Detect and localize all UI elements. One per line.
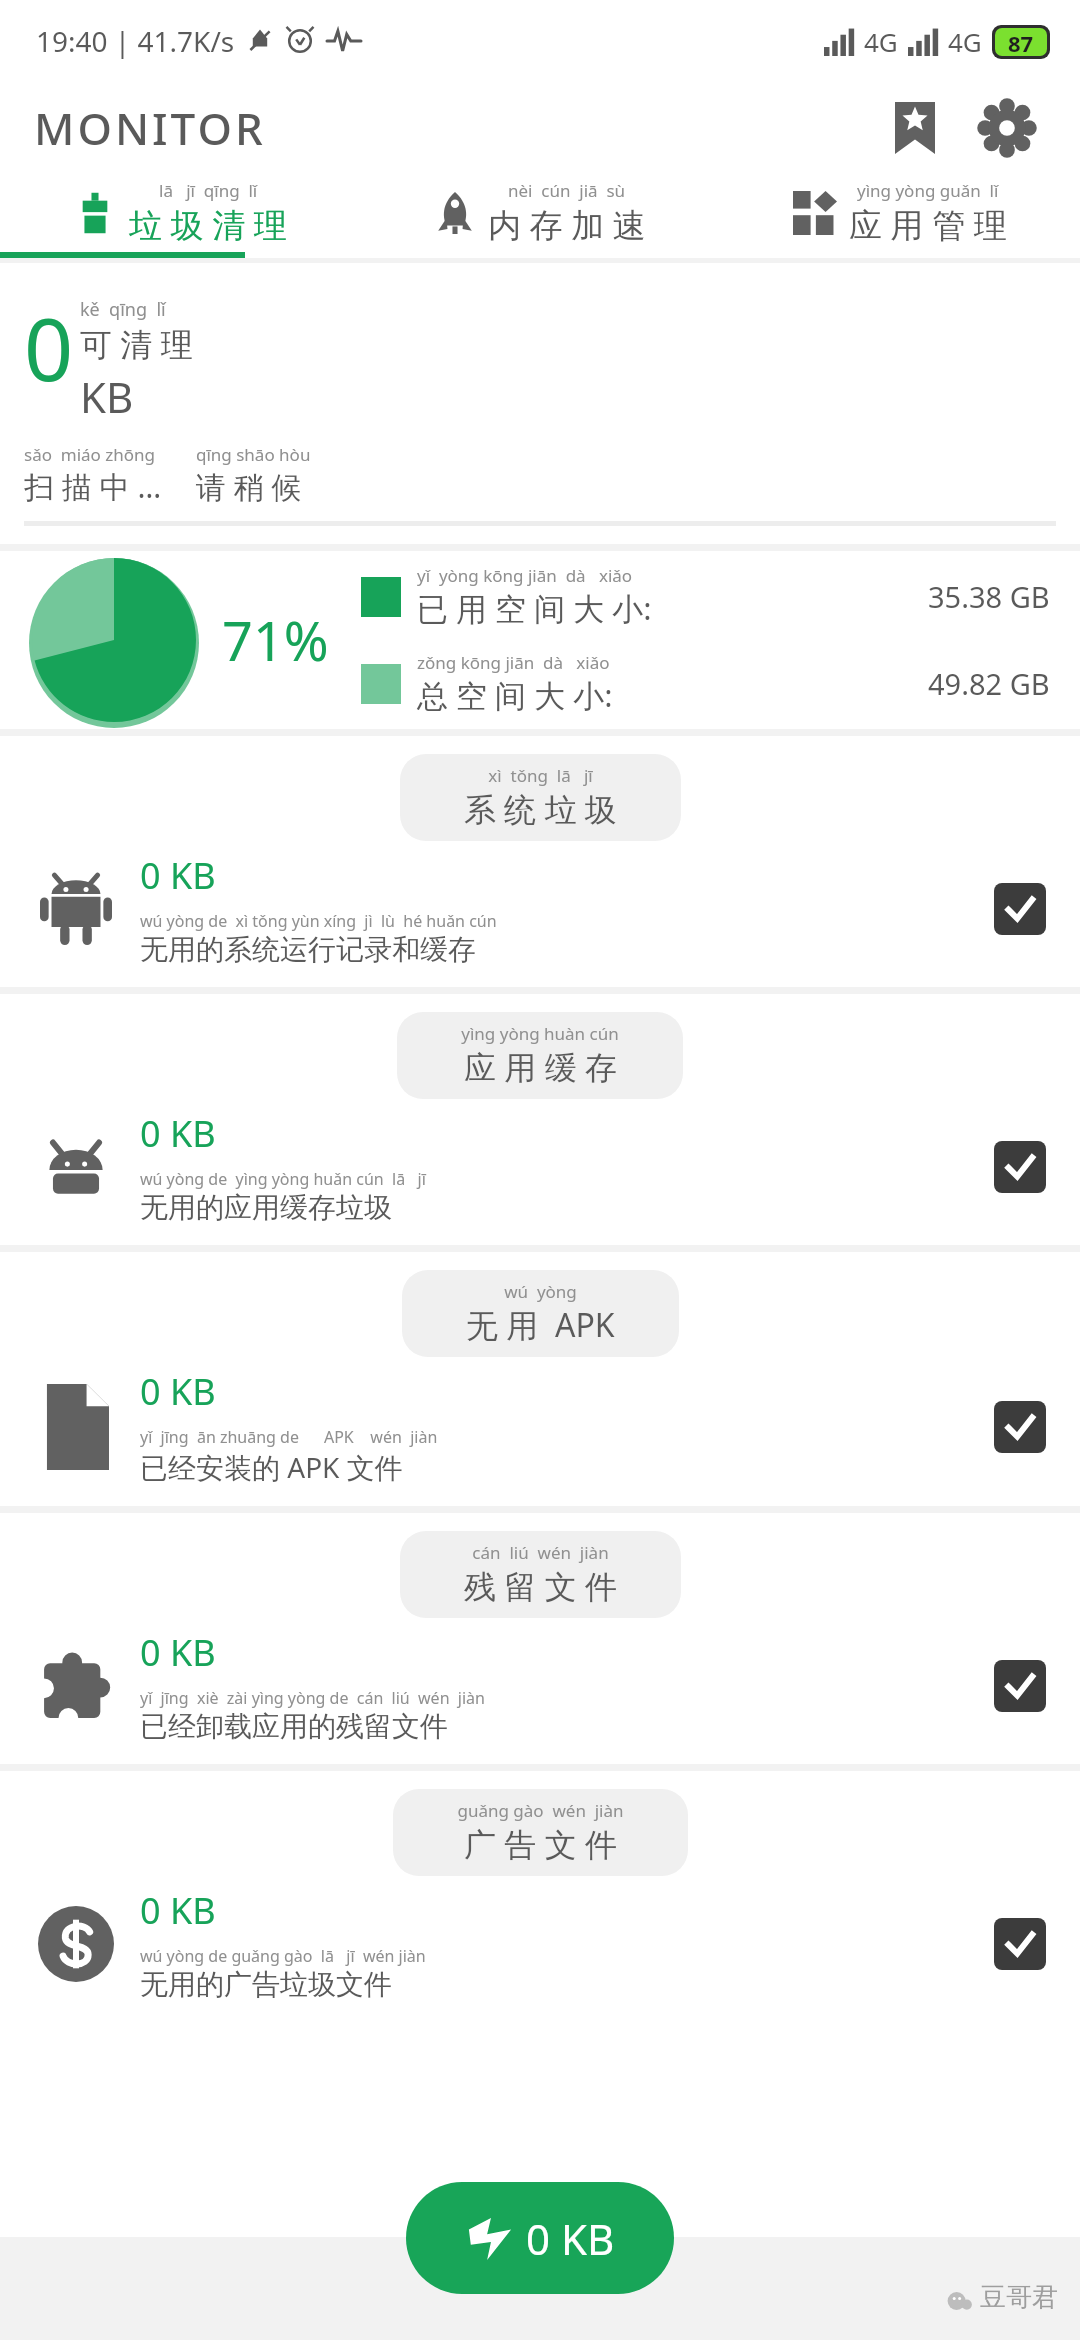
staticText: 71% bbox=[222, 603, 329, 677]
staticText: yǐ jīng xiè zài yìng yòng de cán liú wén… bbox=[140, 1687, 485, 1709]
staticText: 残 留 文 件 bbox=[464, 1564, 617, 1608]
staticText: wú yòng de guǎng gào lā jī wén jiàn bbox=[140, 1945, 426, 1967]
button[interactable]: xì tǒng lā jī bbox=[400, 754, 681, 841]
staticText: 垃 圾 清 理 bbox=[129, 202, 287, 247]
staticText: sǎo miáo zhōng bbox=[24, 443, 156, 466]
staticText: wú yòng bbox=[504, 1280, 577, 1303]
staticText: 49.82 GB bbox=[928, 664, 1050, 703]
button[interactable]: yìng yòng huàn cún bbox=[397, 1012, 683, 1099]
staticText: 可 清 理 bbox=[80, 322, 193, 366]
staticText: 19:40 | 41.7K/s bbox=[36, 22, 235, 60]
staticText: xì tǒng lā jī bbox=[488, 764, 593, 787]
button[interactable]: guǎng gào wén jiàn bbox=[393, 1789, 688, 1876]
staticText: guǎng gào wén jiàn bbox=[457, 1799, 624, 1822]
staticText: MONITOR bbox=[34, 98, 266, 158]
staticText: 无用的系统运行记录和缓存 bbox=[140, 932, 476, 967]
button[interactable]: Toggle 无 用 APK bbox=[994, 1401, 1046, 1453]
staticText: 0 KB bbox=[140, 1367, 216, 1416]
staticText: qīng shāo hòu bbox=[196, 443, 311, 466]
staticText: 总 空 间 大 小: bbox=[417, 674, 613, 716]
button[interactable]: 0 KB bbox=[0, 1876, 1080, 2022]
button[interactable]: Settings bbox=[970, 91, 1044, 165]
staticText: 应 用 管 理 bbox=[849, 202, 1007, 247]
staticText: wú yòng de xì tǒng yùn xíng jì lù hé huǎ… bbox=[140, 910, 497, 932]
button[interactable]: Toggle 应 用 缓 存 bbox=[994, 1141, 1046, 1193]
staticText: 已经安装的 APK 文件 bbox=[140, 1448, 403, 1486]
staticText: 豆哥君 bbox=[980, 2281, 1058, 2314]
button[interactable]: 0 KB bbox=[0, 1357, 1080, 1506]
staticText: yǐ yòng kōng jiān dà xiǎo bbox=[417, 564, 633, 587]
button[interactable]: 0 KB bbox=[406, 2182, 674, 2294]
staticText: zǒng kōng jiān dà xiǎo bbox=[417, 651, 610, 674]
staticText: 系 统 垃 圾 bbox=[464, 787, 617, 831]
staticText: 87 bbox=[1008, 28, 1034, 56]
staticText: 4G bbox=[948, 24, 982, 59]
staticText: 0 KB bbox=[140, 1886, 216, 1935]
staticText: 无用的广告垃圾文件 bbox=[140, 1967, 392, 2002]
button[interactable]: 0 KB bbox=[0, 1618, 1080, 1764]
button[interactable]: yìng yòng guǎn lǐ bbox=[720, 174, 1080, 252]
staticText: cán liú wén jiàn bbox=[472, 1541, 609, 1564]
button[interactable]: 0 KB bbox=[0, 1099, 1080, 1245]
button[interactable]: Bookmark bbox=[878, 91, 952, 165]
staticText: 扫 描 中 … bbox=[24, 466, 162, 507]
staticText: 35.38 GB bbox=[928, 577, 1050, 616]
staticText: 0 KB bbox=[140, 1628, 216, 1677]
staticText: nèi cún jiā sù bbox=[508, 179, 626, 202]
staticText: wú yòng de yìng yòng huǎn cún lā jī bbox=[140, 1168, 426, 1190]
staticText: 0 bbox=[24, 289, 74, 406]
staticText: 已 用 空 间 大 小: bbox=[417, 587, 652, 629]
staticText: yìng yòng guǎn lǐ bbox=[857, 179, 999, 202]
staticText: 已经卸载应用的残留文件 bbox=[140, 1709, 448, 1744]
staticText: 4G bbox=[864, 24, 898, 59]
button[interactable]: Toggle 残 留 文 件 bbox=[994, 1660, 1046, 1712]
button[interactable]: Toggle 系 统 垃 圾 bbox=[994, 883, 1046, 935]
button[interactable]: 0 KB bbox=[0, 841, 1080, 987]
staticText: 内 存 加 速 bbox=[488, 202, 646, 247]
staticText: 0 KB bbox=[526, 2210, 615, 2267]
staticText: yǐ jīng ān zhuāng de APK wén jiàn bbox=[140, 1426, 438, 1448]
staticText: KB bbox=[80, 368, 134, 425]
staticText: yìng yòng huàn cún bbox=[461, 1022, 619, 1045]
button[interactable]: Toggle 广 告 文 件 bbox=[994, 1918, 1046, 1970]
staticText: kě qīng lǐ bbox=[80, 297, 166, 322]
staticText: 无 用 APK bbox=[466, 1303, 615, 1347]
button[interactable]: lā jī qīng lǐ bbox=[0, 174, 360, 252]
button[interactable]: nèi cún jiā sù bbox=[360, 174, 720, 252]
staticText: 请 稍 候 bbox=[196, 466, 302, 507]
button[interactable]: wú yòng bbox=[402, 1270, 679, 1357]
staticText: 应 用 缓 存 bbox=[464, 1045, 617, 1089]
staticText: 0 KB bbox=[140, 851, 216, 900]
button[interactable]: cán liú wén jiàn bbox=[400, 1531, 681, 1618]
staticText: 0 KB bbox=[140, 1109, 216, 1158]
staticText: 广 告 文 件 bbox=[464, 1822, 617, 1866]
staticText: lā jī qīng lǐ bbox=[159, 179, 258, 202]
staticText: 无用的应用缓存垃圾 bbox=[140, 1190, 392, 1225]
